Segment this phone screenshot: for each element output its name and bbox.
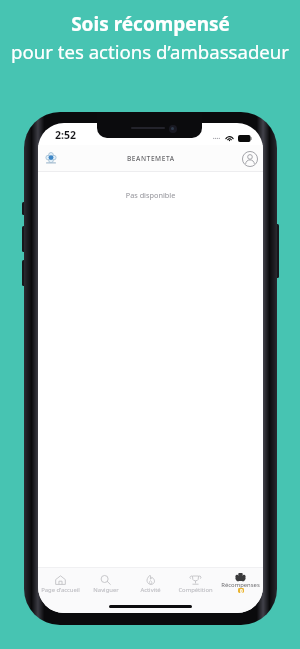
staticText: Compétition — [178, 586, 213, 594]
staticText: 0 — [240, 588, 243, 593]
staticText: Sois récompensé — [71, 11, 230, 37]
staticText: Pas disponible — [38, 190, 263, 200]
button[interactable]: Beantemeta logo — [40, 148, 62, 170]
button[interactable]: Profile — [240, 149, 260, 169]
button[interactable]: Page d’accueil — [38, 568, 83, 606]
button[interactable]: Naviguer — [83, 568, 128, 606]
staticText: Activité — [140, 586, 161, 594]
staticText: Récompenses — [221, 581, 260, 589]
staticText: 2:52 — [55, 128, 76, 142]
button[interactable]: Activité — [128, 568, 173, 606]
staticText: pour tes actions d’ambassadeur — [11, 39, 289, 64]
button[interactable]: Récompenses — [218, 568, 263, 606]
staticText: Page d’accueil — [41, 586, 80, 594]
staticText: Naviguer — [93, 586, 119, 594]
staticText: BEANTEMETA — [127, 154, 175, 163]
button[interactable]: Compétition — [173, 568, 218, 606]
